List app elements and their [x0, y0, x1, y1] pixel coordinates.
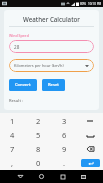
button[interactable]: Recents — [52, 170, 73, 183]
button[interactable]: 28 — [9, 40, 94, 53]
staticText: Result : — [9, 98, 24, 104]
staticText: 2 — [36, 116, 41, 126]
staticText: Kilometers per hour (km/h) — [14, 63, 64, 68]
staticText: 10:10 PM — [88, 2, 102, 6]
button[interactable]: 8 — [25, 142, 51, 156]
staticText: Reset — [48, 82, 59, 88]
button[interactable]: Space — [77, 128, 103, 142]
button[interactable]: , — [0, 156, 25, 170]
staticText: 80% — [80, 2, 87, 6]
staticText: 9 — [62, 144, 67, 154]
staticText: 6 — [62, 130, 67, 140]
button[interactable]: Reset — [42, 79, 65, 91]
staticText: 0 — [36, 158, 41, 168]
staticText: , — [11, 158, 14, 168]
button[interactable]: Minus — [77, 113, 103, 128]
staticText: Convert — [15, 82, 31, 88]
button[interactable]: 5 — [25, 128, 51, 142]
button[interactable]: 1 — [0, 113, 25, 128]
staticText: 4 — [10, 130, 15, 140]
staticText: 28 — [14, 44, 20, 50]
button[interactable]: . — [51, 156, 77, 170]
button[interactable]: Convert — [9, 79, 37, 91]
button[interactable]: 4 — [0, 128, 25, 142]
button[interactable]: 0 — [25, 156, 51, 170]
staticText: 3 — [62, 116, 67, 126]
button[interactable]: Backspace — [77, 142, 103, 156]
button[interactable]: 9 — [51, 142, 77, 156]
button[interactable]: Keyboard — [73, 170, 94, 183]
staticText: 7 — [10, 144, 15, 154]
staticText: 1 — [10, 116, 15, 126]
staticText: . — [63, 158, 66, 168]
staticText: Weather Calculator — [9, 15, 94, 23]
button[interactable]: Kilometers per hour (km/h) — [9, 59, 94, 72]
staticText: 5 — [36, 130, 41, 140]
button[interactable]: Home — [31, 170, 52, 183]
button[interactable]: 7 — [0, 142, 25, 156]
button[interactable]: Back — [10, 170, 31, 183]
button[interactable]: 2 — [25, 113, 51, 128]
staticText: Wind Speed — [9, 33, 29, 38]
staticText: 8 — [36, 144, 41, 154]
button[interactable]: 3 — [51, 113, 77, 128]
button[interactable]: Enter — [77, 156, 103, 170]
button[interactable]: 6 — [51, 128, 77, 142]
